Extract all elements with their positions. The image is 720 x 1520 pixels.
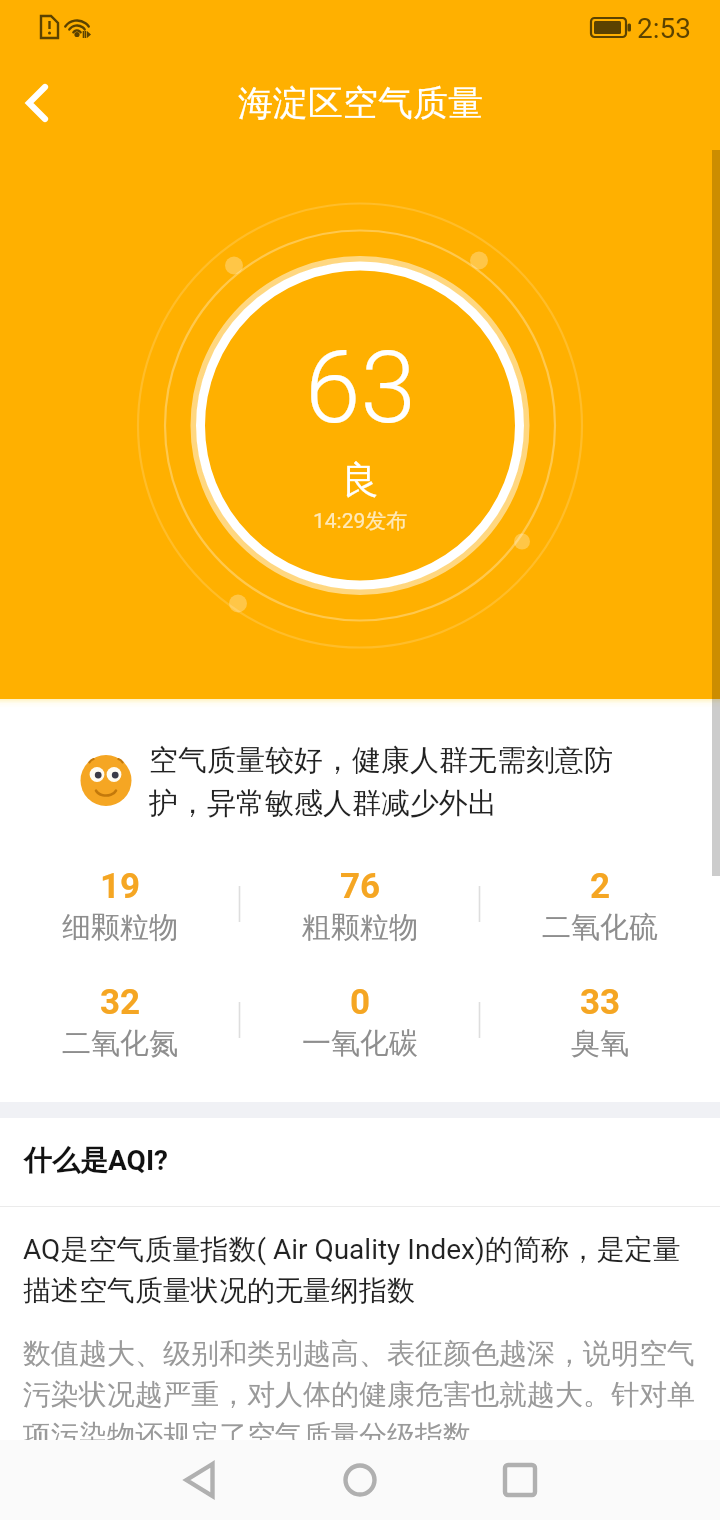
staticText: 32 [100, 982, 141, 1023]
staticText: 什么是AQI? [24, 1143, 169, 1178]
staticText: 14:29发布 [313, 508, 408, 534]
staticText: 2 [590, 866, 611, 907]
button[interactable]: 32 [0, 974, 240, 1090]
button[interactable]: Back [0, 60, 85, 145]
staticText: 粗颗粒物 [302, 909, 418, 946]
button[interactable]: 什么是AQI? [0, 1118, 720, 1206]
staticText: 二氧化硫 [542, 909, 658, 946]
button[interactable]: 76 [240, 858, 480, 974]
button[interactable]: 33 [480, 974, 720, 1090]
staticText: 二氧化氮 [62, 1025, 178, 1062]
button[interactable]: 2 [480, 858, 720, 974]
staticText: 一氧化碳 [302, 1025, 418, 1062]
staticText: 海淀区空气质量 [238, 81, 483, 125]
staticText: 76 [340, 866, 381, 907]
staticText: 33 [580, 982, 621, 1023]
staticText: 臭氧 [571, 1025, 629, 1062]
staticText: 细颗粒物 [62, 909, 178, 946]
staticText: AQ是空气质量指数( Air Quality Index)的简称，是定量描述空气… [23, 1232, 697, 1308]
button[interactable]: Recents [480, 1440, 560, 1520]
staticText: 0 [350, 982, 371, 1023]
staticText: 空气质量较好，健康人群无需刻意防护，异常敏感人群减少外出 [149, 742, 619, 822]
staticText: 数值越大、级别和类别越高、表征颜色越深，说明空气污染状况越严重，对人体的健康危害… [23, 1336, 697, 1453]
button[interactable]: Home [320, 1440, 400, 1520]
staticText: 19 [100, 866, 141, 907]
button[interactable]: 0 [240, 974, 480, 1090]
staticText: 63 [305, 329, 416, 446]
staticText: 2:53 [637, 12, 691, 45]
button[interactable]: 19 [0, 858, 240, 974]
button[interactable]: Back [160, 1440, 240, 1520]
staticText: 良 [341, 456, 379, 504]
